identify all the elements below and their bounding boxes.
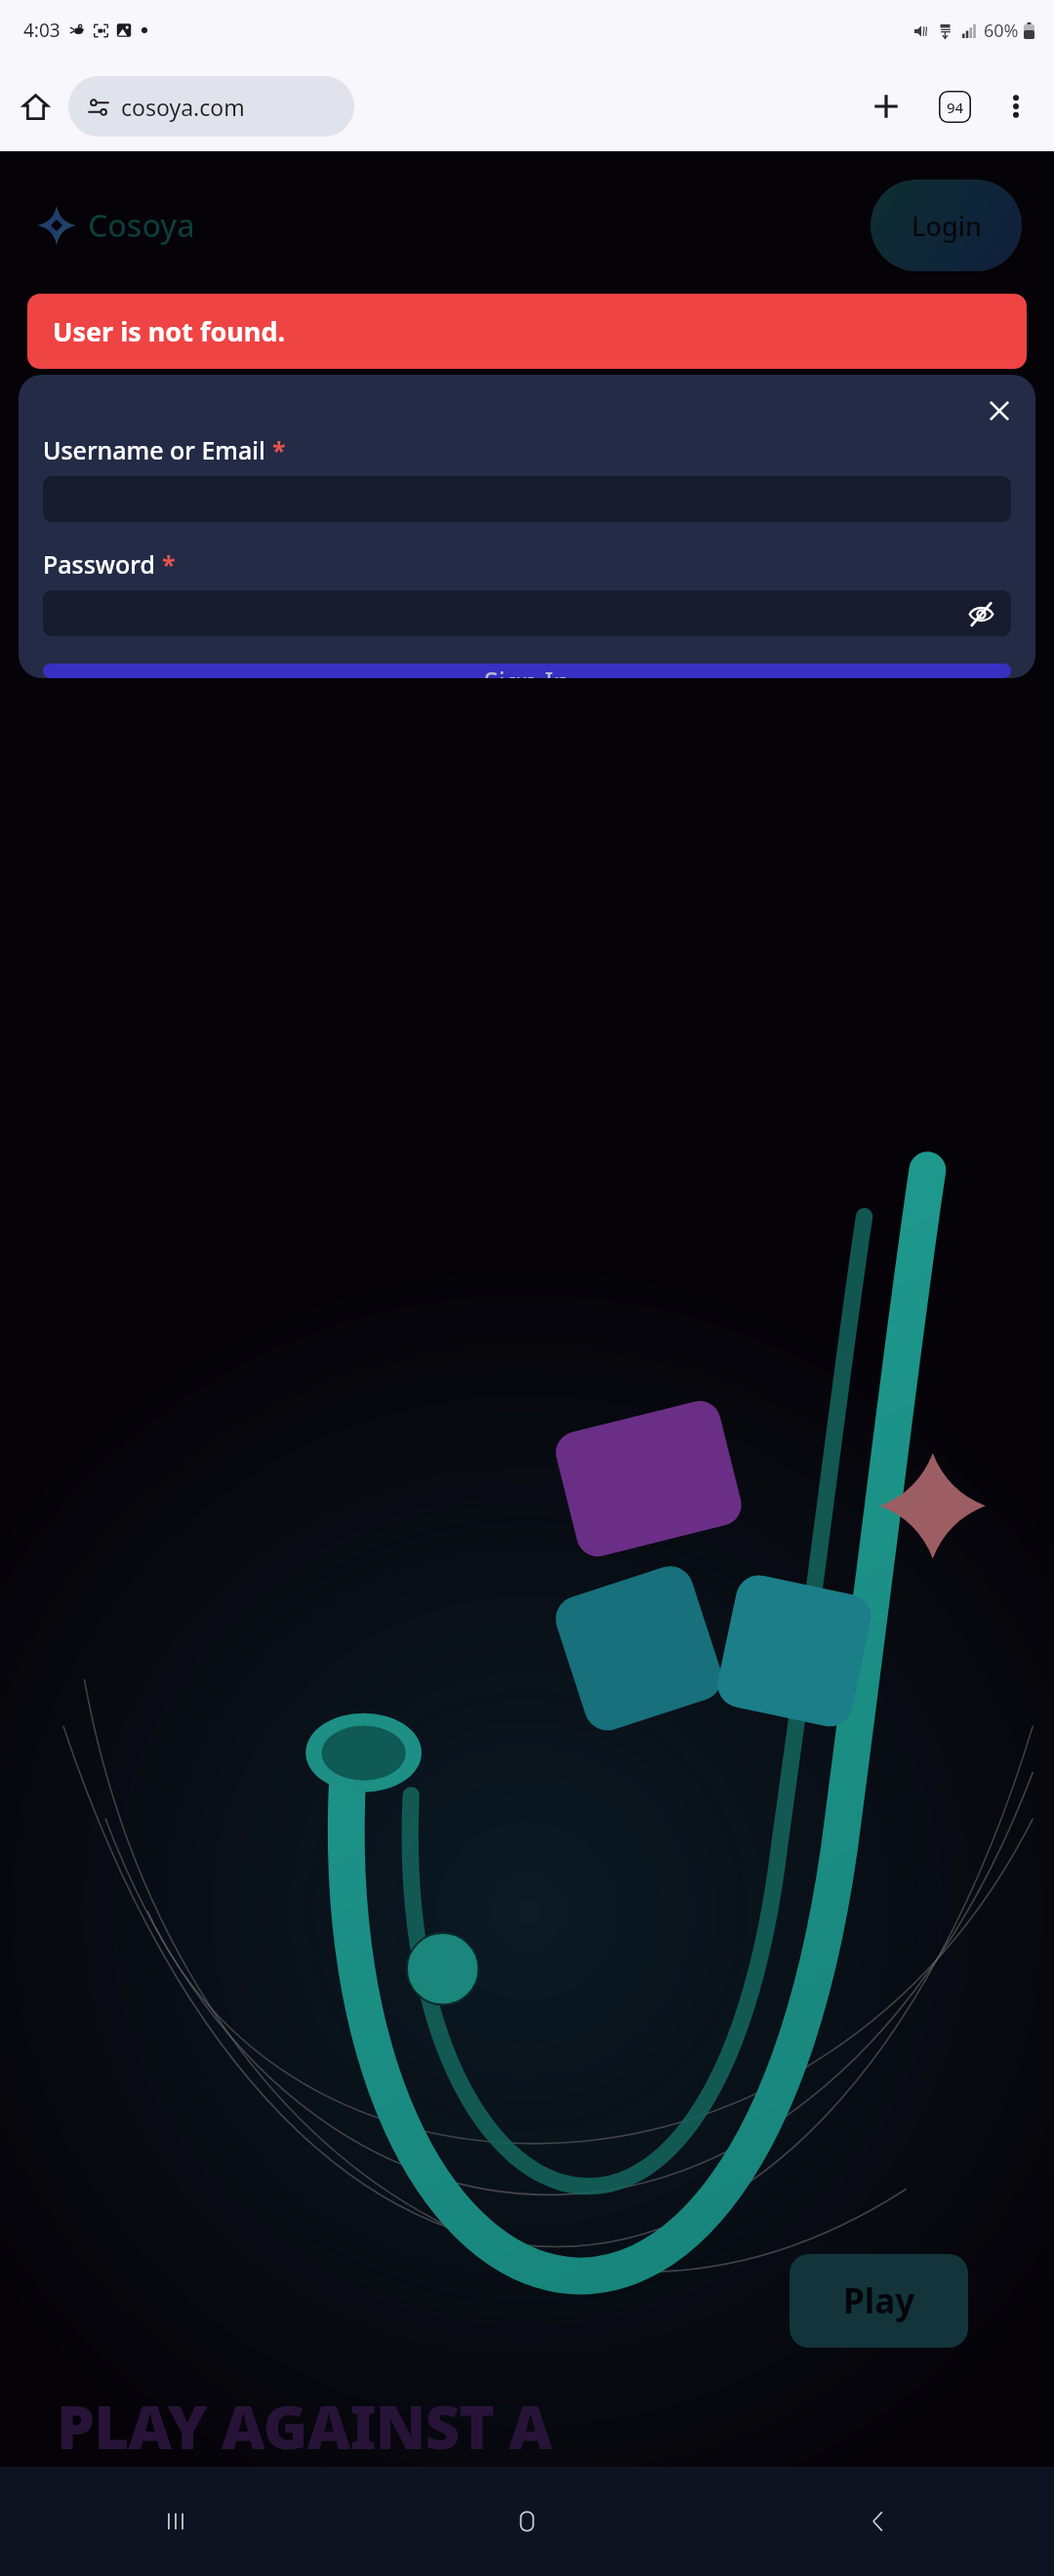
button[interactable]: Home — [351, 2467, 703, 2576]
staticText: Play — [843, 2277, 915, 2324]
staticText: 60% — [984, 19, 1019, 43]
button[interactable] — [43, 476, 1011, 522]
button[interactable]: Sign In — [43, 664, 1011, 678]
staticText: 4:03 — [23, 18, 61, 43]
staticText: * — [162, 547, 176, 581]
staticText: cosoya.com — [121, 92, 245, 122]
staticText: User is not found. — [53, 313, 286, 349]
staticText: Password — [43, 547, 155, 581]
button[interactable]: Back — [703, 2467, 1054, 2576]
button[interactable]: Show password — [960, 593, 1001, 634]
staticText: Sign In — [484, 664, 570, 678]
staticText: PLAY AGAINST A — [57, 2385, 552, 2467]
staticText: WEB3 — [29, 508, 272, 628]
button[interactable]: More options — [990, 80, 1042, 133]
button[interactable]: Login — [871, 180, 1022, 271]
staticText: * — [272, 433, 286, 466]
button[interactable]: Play — [790, 2254, 968, 2348]
button[interactable]: Home — [10, 81, 61, 132]
button[interactable]: User is not found. — [27, 294, 1027, 369]
button[interactable]: Show password — [43, 590, 1011, 636]
staticText: Cosoya — [88, 204, 195, 247]
staticText: 94 — [947, 98, 964, 117]
button[interactable]: Close — [973, 384, 1026, 437]
staticText: Username or Email — [43, 433, 265, 466]
button[interactable]: Tabs, 94 open — [927, 79, 982, 134]
staticText: THE FIRST — [29, 386, 451, 506]
staticText: Login — [912, 208, 982, 244]
button[interactable]: Cosoya — [37, 204, 195, 247]
button[interactable]: New tab — [859, 79, 913, 134]
button[interactable]: cosoya.com — [68, 76, 354, 137]
button[interactable]: Recent apps — [0, 2467, 351, 2576]
